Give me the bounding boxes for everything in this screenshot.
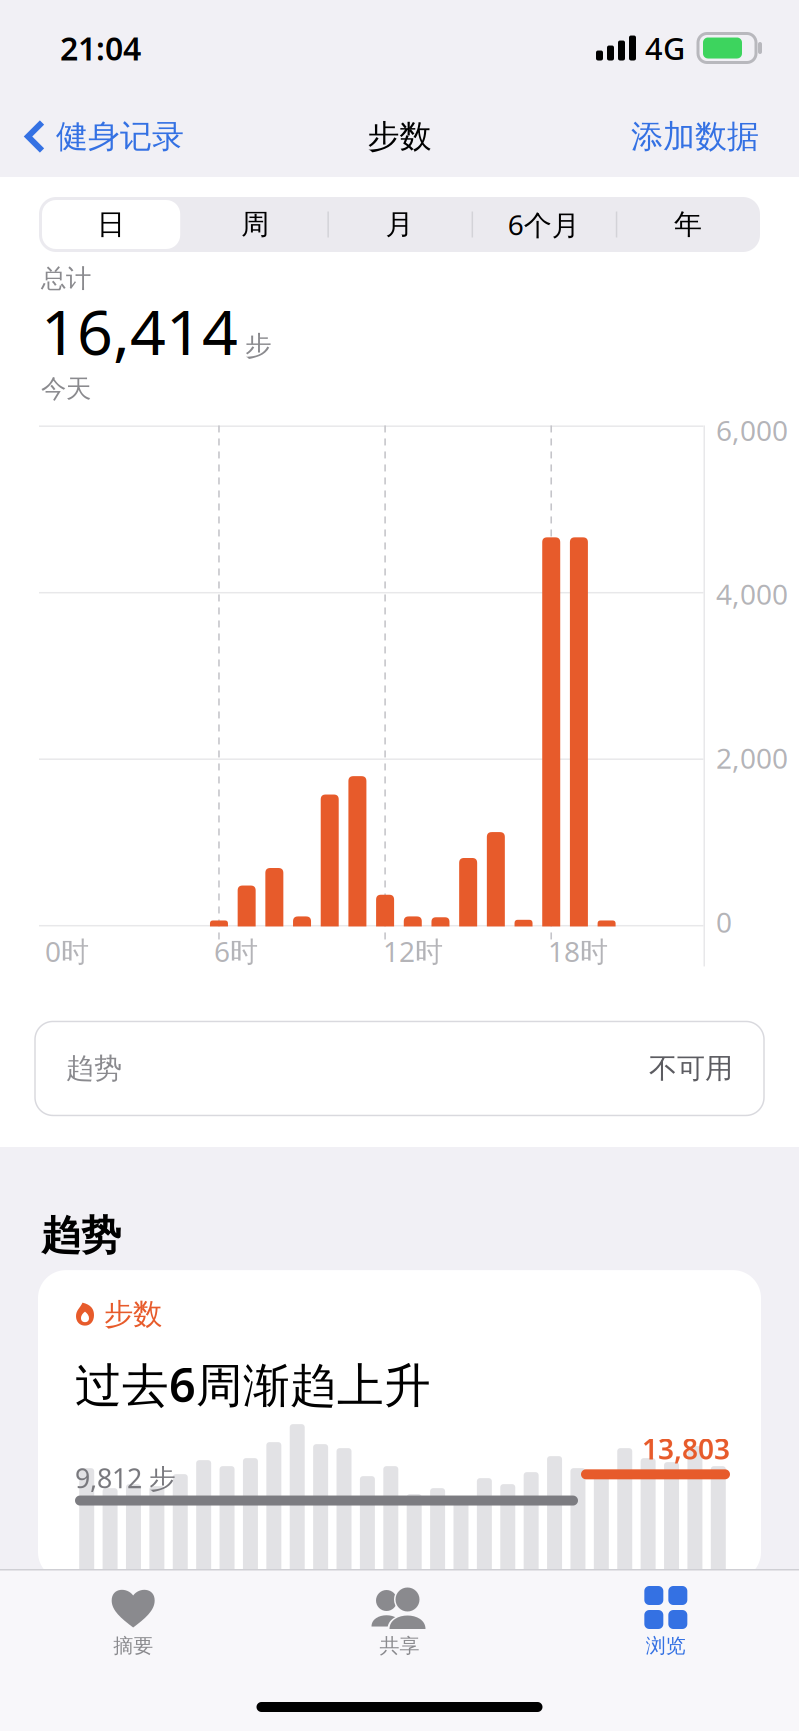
button[interactable]: 共享 (266, 1584, 533, 1658)
button[interactable]: 浏览 (533, 1584, 799, 1658)
staticText: 6个月 (508, 206, 580, 243)
button[interactable]: 周 (183, 197, 327, 252)
button[interactable]: 健身记录 (0, 105, 184, 168)
staticText: 趋势 (41, 1211, 121, 1260)
staticText: 今天 (41, 373, 91, 404)
staticText: 步数 (104, 1296, 162, 1332)
staticText: 16,414 (41, 289, 238, 372)
staticText: 步 (245, 330, 272, 362)
staticText: 年 (674, 207, 702, 242)
staticText: 共享 (379, 1633, 419, 1658)
staticText: 过去6周渐趋上升 (75, 1353, 431, 1415)
staticText: 健身记录 (56, 117, 184, 156)
button[interactable]: 年 (616, 197, 760, 252)
button[interactable]: 6个月 (472, 197, 616, 252)
staticText: 21:04 (60, 27, 141, 69)
staticText: 18时 (548, 932, 608, 970)
staticText: 摘要 (113, 1633, 153, 1658)
staticText: 4,000 (716, 575, 788, 613)
staticText: 日 (97, 207, 125, 242)
staticText: 13,803 (642, 1430, 730, 1467)
button[interactable]: 日 (39, 197, 183, 252)
staticText: 12时 (383, 932, 443, 970)
staticText: 浏览 (646, 1633, 686, 1658)
staticText: 周 (241, 207, 269, 242)
staticText: 月 (385, 207, 413, 242)
button[interactable]: 添加数据 (631, 105, 799, 168)
staticText: 不可用 (649, 1051, 733, 1086)
staticText: 趋势 (66, 1051, 122, 1086)
staticText: 6,000 (716, 411, 788, 449)
staticText: 总计 (41, 263, 91, 294)
staticText: 添加数据 (631, 117, 759, 156)
staticText: 0时 (45, 932, 89, 970)
staticText: 4G (645, 28, 685, 68)
staticText: 0 (716, 903, 732, 940)
button[interactable]: 摘要 (0, 1584, 266, 1658)
staticText: 2,000 (716, 739, 788, 776)
staticText: 9,812 步 (75, 1460, 176, 1495)
button[interactable]: 月 (327, 197, 472, 252)
staticText: 步数 (367, 117, 431, 156)
staticText: 6时 (214, 932, 258, 970)
